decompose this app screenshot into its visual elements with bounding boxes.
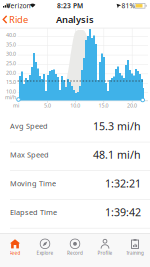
- staticText: Elapsed Time: [10, 207, 57, 217]
- staticText: Profile: [97, 250, 112, 256]
- staticText: 35.0: [6, 41, 16, 48]
- staticText: Feed: [9, 250, 20, 256]
- staticText: 25.0: [6, 60, 16, 67]
- staticText: Verizon: [7, 1, 31, 10]
- button[interactable]: Feed: [9, 239, 20, 256]
- staticText: Moving Time: [10, 178, 56, 188]
- staticText: 1:39:42: [105, 205, 141, 219]
- button[interactable]: Explore: [36, 239, 53, 256]
- staticText: Training: [126, 250, 144, 256]
- staticText: 10.0: [6, 88, 16, 95]
- staticText: Avg Speed: [10, 121, 48, 131]
- staticText: 5.0: [44, 102, 51, 109]
- staticText: 15.0: [6, 78, 16, 86]
- button[interactable]: Training: [126, 239, 144, 256]
- staticText: 81%: [121, 1, 135, 10]
- staticText: 30.0: [6, 50, 16, 57]
- staticText: 20.0: [127, 102, 137, 109]
- staticText: Explore: [36, 250, 53, 256]
- staticText: 15.0: [99, 102, 109, 109]
- button[interactable]: Record: [67, 239, 83, 256]
- button[interactable]: Profile: [97, 239, 112, 256]
- staticText: 48.1 mi/h: [93, 148, 141, 162]
- button[interactable]: Ride: [2, 13, 28, 26]
- staticText: 1:32:21: [105, 176, 141, 190]
- staticText: Analysis: [56, 13, 94, 26]
- staticText: 8:23 PM: [57, 1, 83, 10]
- staticText: mi/h: [5, 94, 16, 101]
- staticText: Ride: [9, 13, 28, 26]
- staticText: 15.3 mi/h: [93, 119, 141, 133]
- staticText: mi: [13, 102, 19, 109]
- staticText: 40.0: [6, 31, 16, 39]
- staticText: Record: [67, 250, 83, 256]
- staticText: Max Speed: [10, 150, 49, 160]
- staticText: 10.0: [70, 102, 80, 109]
- staticText: 20.0: [6, 69, 16, 76]
